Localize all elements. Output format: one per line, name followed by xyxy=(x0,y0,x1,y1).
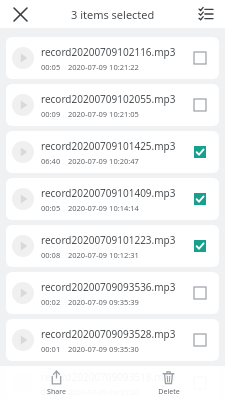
button[interactable]: record20200709102055.mp3 xyxy=(6,84,219,126)
button[interactable]: Delete xyxy=(112,366,225,400)
button[interactable]: Not selected xyxy=(185,90,215,120)
staticText: 00:05 xyxy=(41,62,61,72)
staticText: 00:08 xyxy=(41,250,61,260)
button[interactable]: Not selected xyxy=(185,43,215,73)
button[interactable]: Share xyxy=(0,366,112,400)
staticText: record20200709101425.mp3 xyxy=(41,139,176,153)
staticText: 00:02 xyxy=(41,297,61,307)
button[interactable]: Not selected xyxy=(185,325,215,355)
staticText: record20200709101409.mp3 xyxy=(41,186,176,200)
staticText: record20200709093536.mp3 xyxy=(41,280,176,294)
staticText: record20200709093528.mp3 xyxy=(41,327,176,341)
button[interactable]: Select all xyxy=(193,1,219,27)
button[interactable]: record20200709101409.mp3 xyxy=(6,178,219,220)
staticText: 3 items selected xyxy=(71,7,155,22)
staticText: 00:05 xyxy=(41,203,61,213)
staticText: record20200709093518.mp3 xyxy=(41,370,176,384)
staticText: 00:03 xyxy=(41,387,61,397)
button[interactable]: Not selected xyxy=(185,278,215,308)
staticText: 2020-07-09 10:12:31 xyxy=(68,250,139,260)
staticText: 2020-07-09 10:20:47 xyxy=(68,156,139,166)
staticText: 2020-07-09 09:35:39 xyxy=(68,297,139,307)
staticText: record20200709102055.mp3 xyxy=(41,92,176,106)
staticText: 2020-07-09 10:14:14 xyxy=(68,203,139,213)
staticText: 2020-07-09 10:21:22 xyxy=(68,62,139,72)
staticText: record20200709101223.mp3 xyxy=(41,233,176,247)
button[interactable]: record20200709093528.mp3 xyxy=(6,319,219,361)
staticText: Share xyxy=(47,387,66,397)
button[interactable]: Selected xyxy=(185,137,215,167)
button[interactable]: record20200709093536.mp3 xyxy=(6,272,219,314)
staticText: 06:40 xyxy=(41,156,61,166)
staticText: record20200709102116.mp3 xyxy=(41,45,176,59)
staticText: Delete xyxy=(158,387,180,397)
staticText: 00:09 xyxy=(41,109,61,119)
staticText: 2020-07-09 10:21:05 xyxy=(68,109,139,119)
button[interactable]: record20200709093518.mp3 xyxy=(6,366,219,400)
button[interactable]: Selected xyxy=(185,184,215,214)
button[interactable]: record20200709102116.mp3 xyxy=(6,37,219,79)
button[interactable]: record20200709101223.mp3 xyxy=(6,225,219,267)
button[interactable]: Selected xyxy=(185,231,215,261)
staticText: 2020-07-09 09:35:30 xyxy=(68,344,139,354)
button[interactable]: record20200709101425.mp3 xyxy=(6,131,219,173)
staticText: 00:01 xyxy=(41,344,61,354)
button[interactable]: Close xyxy=(6,0,34,28)
